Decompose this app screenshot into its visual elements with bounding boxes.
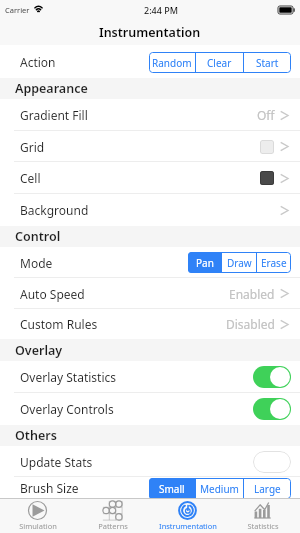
button[interactable]: Toggle on	[253, 398, 291, 420]
staticText: Medium	[200, 482, 239, 496]
button[interactable]: Grid	[0, 131, 300, 162]
button[interactable]: Start	[244, 52, 291, 73]
button[interactable]: Instrumentation	[150, 499, 225, 533]
staticText: Small	[159, 482, 185, 496]
button[interactable]: Erase	[257, 252, 291, 273]
button[interactable]: Medium	[196, 478, 243, 498]
staticText: Large	[254, 482, 281, 496]
button[interactable]: Overlay Statistics	[0, 361, 300, 393]
staticText: Start	[256, 56, 279, 70]
staticText: Appearance	[15, 80, 88, 97]
button[interactable]: Background	[0, 194, 300, 226]
button[interactable]: Patterns	[75, 499, 150, 533]
staticText: Pan	[196, 256, 214, 270]
button[interactable]: Draw	[222, 252, 256, 273]
staticText: Others	[15, 427, 57, 444]
button[interactable]: Random	[149, 52, 195, 73]
button[interactable]: Brush Size	[0, 477, 300, 498]
button[interactable]: Clear	[196, 52, 243, 73]
button[interactable]: Cell	[0, 162, 300, 194]
staticText: Patterns	[98, 521, 128, 531]
staticText: Cell	[20, 170, 41, 186]
staticText: Overlay Statistics	[20, 369, 117, 385]
button[interactable]: Statistics	[225, 499, 300, 533]
button[interactable]: Action	[0, 45, 300, 78]
staticText: Statistics	[247, 521, 279, 531]
staticText: Action	[20, 54, 56, 70]
button[interactable]: Update Stats	[0, 446, 300, 477]
staticText: Auto Speed	[20, 286, 85, 302]
button[interactable]: Simulation	[0, 499, 75, 533]
staticText: Background	[20, 202, 89, 218]
staticText: 2:44 PM	[144, 4, 178, 16]
button[interactable]: Mode	[0, 247, 300, 278]
button[interactable]: Toggle on	[253, 366, 291, 388]
staticText: Disabled	[226, 316, 275, 332]
staticText: Overlay Controls	[20, 401, 114, 417]
staticText: Update Stats	[20, 454, 93, 470]
staticText: Grid	[20, 139, 45, 155]
button[interactable]: Large	[244, 478, 291, 498]
staticText: Gradient Fill	[20, 107, 88, 123]
staticText: Random	[152, 56, 192, 70]
button[interactable]: Pan	[188, 252, 221, 273]
staticText: Enabled	[229, 286, 275, 302]
staticText: Overlay	[15, 342, 63, 359]
staticText: Control	[15, 228, 61, 245]
staticText: Custom Rules	[20, 316, 98, 332]
button[interactable]: Custom Rules	[0, 309, 300, 339]
staticText: Instrumentation	[159, 521, 217, 531]
staticText: Carrier	[5, 5, 30, 15]
staticText: Draw	[227, 256, 252, 270]
button[interactable]: Overlay Controls	[0, 393, 300, 425]
button[interactable]: Gradient Fill	[0, 99, 300, 131]
button[interactable]: Small	[149, 478, 195, 498]
staticText: Brush Size	[20, 480, 79, 496]
staticText: Erase	[261, 256, 287, 270]
staticText: Simulation	[19, 521, 57, 531]
staticText: Mode	[20, 255, 53, 271]
button[interactable]: Auto Speed	[0, 278, 300, 309]
staticText: Clear	[207, 56, 232, 70]
staticText: Off	[257, 107, 275, 123]
button[interactable]: Toggle off	[253, 451, 291, 473]
staticText: Instrumentation	[99, 24, 201, 41]
